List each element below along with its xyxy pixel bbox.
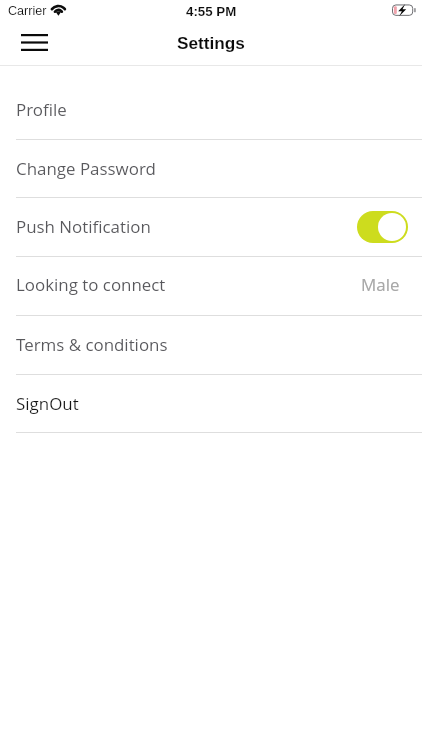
staticText: Push Notification bbox=[16, 215, 151, 238]
button[interactable]: Change Password bbox=[0, 139, 422, 198]
staticText: SignOut bbox=[16, 392, 79, 415]
button[interactable]: SignOut bbox=[0, 374, 422, 433]
staticText: Profile bbox=[16, 98, 67, 121]
staticText: Settings bbox=[177, 33, 245, 52]
staticText: Terms & conditions bbox=[16, 333, 168, 356]
button[interactable]: Push notification toggle bbox=[357, 211, 408, 243]
staticText: Change Password bbox=[16, 157, 156, 180]
staticText: Looking to connect bbox=[16, 273, 166, 296]
staticText: 4:55 PM bbox=[186, 4, 237, 19]
staticText: Carrier bbox=[8, 4, 47, 18]
button[interactable]: Profile bbox=[0, 80, 422, 139]
button[interactable]: Push Notification bbox=[0, 197, 422, 256]
staticText: Male bbox=[361, 273, 400, 296]
button[interactable]: Terms & conditions bbox=[0, 315, 422, 374]
button[interactable]: Looking to connect bbox=[0, 256, 422, 314]
button[interactable]: Open navigation menu bbox=[7, 26, 60, 63]
